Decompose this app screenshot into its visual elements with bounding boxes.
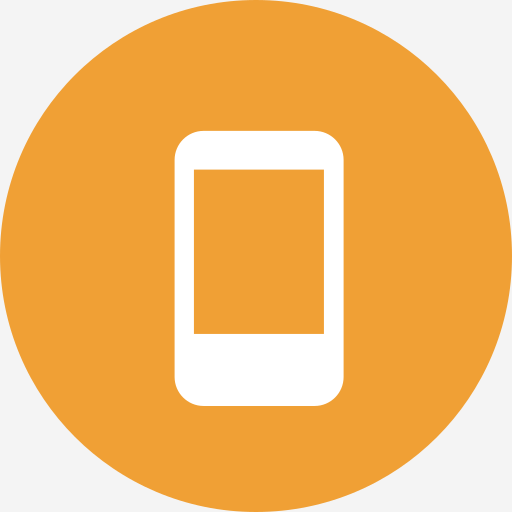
button[interactable]: Mobile device — [0, 0, 512, 512]
